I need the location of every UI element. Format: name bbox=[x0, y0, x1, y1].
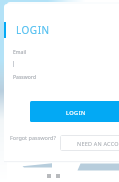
staticText: NEED AN ACCOUNT? bbox=[77, 140, 119, 147]
staticText: Email bbox=[13, 49, 27, 56]
button[interactable]: LOGIN bbox=[30, 101, 119, 122]
staticText: LOGIN bbox=[66, 109, 86, 117]
staticText: LOGIN bbox=[16, 23, 50, 37]
staticText: Password bbox=[13, 74, 36, 81]
button[interactable]: NEED AN ACCOUNT? bbox=[60, 135, 119, 151]
button[interactable]: Forgot password? bbox=[10, 134, 56, 141]
